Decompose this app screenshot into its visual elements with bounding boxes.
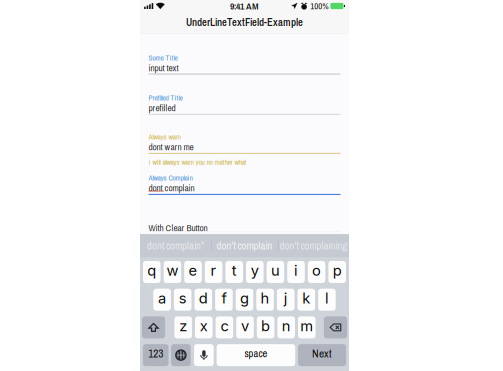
staticText: Prefilled Title <box>148 93 182 103</box>
staticText: m <box>300 317 313 335</box>
staticText: UnderLineTextField-Example <box>186 15 303 29</box>
staticText: j <box>284 289 288 307</box>
staticText: r <box>211 261 217 279</box>
staticText: b <box>261 317 270 335</box>
staticText: 123 <box>148 346 163 361</box>
button[interactable]: z <box>174 316 192 338</box>
staticText: o <box>312 261 321 279</box>
button[interactable]: Change keyboard <box>171 344 191 366</box>
button[interactable]: Dictate <box>194 344 214 366</box>
button[interactable]: l <box>318 289 336 311</box>
button[interactable]: Delete <box>324 316 347 338</box>
staticText: space <box>244 346 267 360</box>
button[interactable]: h <box>256 289 274 311</box>
button[interactable]: w <box>164 261 181 283</box>
button[interactable]: t <box>225 261 243 283</box>
staticText: x <box>200 317 208 335</box>
button[interactable]: j <box>277 289 294 311</box>
button[interactable]: e <box>184 261 202 283</box>
staticText: p <box>333 261 342 279</box>
button[interactable]: o <box>308 261 325 283</box>
staticText: Always warn <box>148 132 180 142</box>
button[interactable]: f <box>215 289 233 311</box>
staticText: h <box>261 289 270 307</box>
staticText: u <box>271 261 280 279</box>
staticText: n <box>282 317 291 335</box>
button[interactable]: don't complaining <box>278 234 349 257</box>
staticText: Next <box>312 346 332 361</box>
staticText: i will always warn you no mather what <box>148 157 246 167</box>
staticText: v <box>241 317 249 335</box>
button[interactable]: b <box>257 316 274 338</box>
button[interactable]: s <box>174 289 191 311</box>
staticText: dont complain" <box>147 238 204 253</box>
button[interactable]: don't complain <box>211 234 278 257</box>
staticText: Some Title <box>148 53 177 63</box>
button[interactable]: dont complain" <box>140 234 211 257</box>
button[interactable]: i <box>287 261 305 283</box>
staticText: i <box>294 261 298 279</box>
staticText: Always Complain <box>148 173 192 183</box>
staticText: d <box>199 289 208 307</box>
staticText: don't complaining <box>279 238 347 253</box>
button[interactable]: k <box>297 289 315 311</box>
staticText: With Clear Button <box>148 222 207 234</box>
staticText: input text <box>148 61 178 74</box>
staticText: 100% <box>310 0 328 12</box>
staticText: y <box>251 261 259 279</box>
staticText: 9:41 AM <box>230 0 259 12</box>
button[interactable]: m <box>298 316 316 338</box>
button[interactable]: u <box>267 261 284 283</box>
staticText: q <box>147 261 156 279</box>
staticText: prefilled <box>148 102 175 114</box>
staticText: z <box>179 317 187 335</box>
staticText: f <box>221 289 226 307</box>
staticText: k <box>302 289 310 307</box>
button[interactable]: a <box>153 289 171 311</box>
button[interactable]: space <box>217 344 295 366</box>
button[interactable]: x <box>195 316 213 338</box>
staticText: don't complain <box>216 238 272 253</box>
button[interactable]: p <box>328 261 346 283</box>
staticText: dont warn me <box>148 141 193 153</box>
staticText: c <box>220 317 228 335</box>
button[interactable]: n <box>277 316 295 338</box>
button[interactable]: c <box>216 316 233 338</box>
staticText: t <box>232 261 237 279</box>
button[interactable]: d <box>194 289 212 311</box>
staticText: a <box>158 289 166 307</box>
staticText: s <box>179 289 187 307</box>
button[interactable]: Shift <box>142 316 165 338</box>
button[interactable]: y <box>246 261 264 283</box>
button[interactable]: q <box>143 261 161 283</box>
staticText: g <box>240 289 249 307</box>
button[interactable]: g <box>236 289 253 311</box>
button[interactable]: With Clear Button <box>148 222 207 234</box>
button[interactable]: v <box>236 316 254 338</box>
button[interactable]: 123 <box>143 344 168 366</box>
button[interactable]: r <box>205 261 222 283</box>
staticText: e <box>188 261 197 279</box>
button[interactable]: Next <box>298 344 346 366</box>
staticText: w <box>166 261 178 279</box>
staticText: dont complain <box>148 182 194 194</box>
staticText: l <box>325 289 329 307</box>
